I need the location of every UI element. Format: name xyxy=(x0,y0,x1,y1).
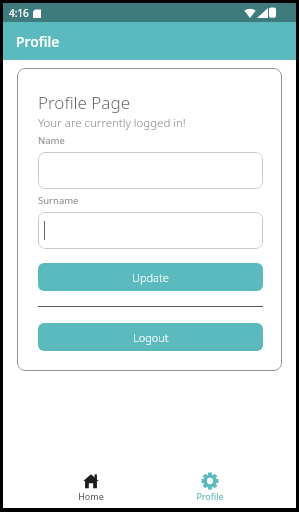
button[interactable]: Profile xyxy=(150,468,269,502)
staticText: Profile xyxy=(196,490,224,502)
staticText: Logout xyxy=(133,330,169,345)
button[interactable]: Update xyxy=(38,263,263,291)
staticText: Surname xyxy=(38,194,79,207)
button[interactable] xyxy=(38,212,263,249)
staticText: Your are currently logged in! xyxy=(38,115,186,131)
staticText: Update xyxy=(132,270,169,285)
other: Profile xyxy=(201,472,219,490)
button[interactable]: Logout xyxy=(38,323,263,351)
button[interactable]: Home xyxy=(31,468,150,502)
button[interactable] xyxy=(38,152,263,189)
staticText: Profile xyxy=(16,32,60,51)
other: Home xyxy=(82,472,100,490)
staticText: Home xyxy=(78,490,104,502)
staticText: 4:16 xyxy=(9,6,29,20)
staticText: Name xyxy=(38,134,65,147)
staticText: Profile Page xyxy=(38,91,131,114)
